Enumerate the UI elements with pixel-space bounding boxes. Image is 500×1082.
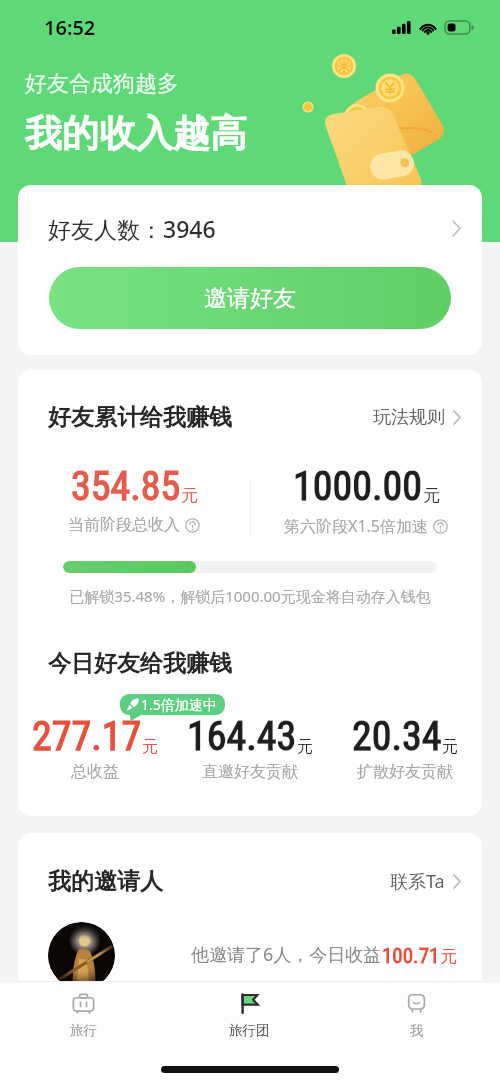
staticText: 元 (297, 737, 313, 757)
staticText: 邀请好友 (204, 284, 296, 313)
staticText: 好友合成狗越多 (25, 70, 179, 98)
staticText: 旅行团 (229, 1022, 270, 1039)
staticText: 20.34 (352, 713, 442, 760)
staticText: 277.17 (32, 713, 142, 760)
staticText: 元 (181, 485, 198, 506)
staticText: 扩散好友贡献 (357, 762, 453, 782)
staticText: 我的收入越高 (25, 110, 247, 157)
staticText: 旅行 (70, 1022, 97, 1039)
staticText: 我的邀请人 (48, 867, 163, 896)
staticText: 元 (142, 737, 158, 757)
button[interactable]: 玩法规则 (373, 403, 461, 432)
staticText: 第六阶段X1.5倍加速 (284, 515, 428, 537)
staticText: 354.85 (71, 463, 181, 510)
staticText: 玩法规则 (373, 406, 445, 429)
button[interactable]: 旅行团 (166, 982, 333, 1048)
staticText: 当前阶段总收入 (68, 515, 180, 535)
staticText: 元 (442, 737, 458, 757)
staticText: 16:52 (44, 14, 96, 41)
staticText: 我 (410, 1022, 424, 1039)
staticText: 164.43 (187, 713, 297, 760)
staticText: 100.71 (382, 944, 440, 969)
button[interactable]: 好友人数：3946 (18, 185, 482, 267)
staticText: 今日好友给我赚钱 (48, 649, 232, 678)
staticText: 已解锁35.48%，解锁后1000.00元现金将自动存入钱包 (18, 586, 482, 606)
staticText: 元 (440, 946, 457, 967)
staticText: 总收益 (71, 762, 119, 782)
staticText: 直邀好友贡献 (202, 762, 298, 782)
staticText: 好友人数：3946 (48, 213, 216, 244)
staticText: 1000.00 (293, 463, 423, 510)
button[interactable]: 我 (333, 982, 500, 1048)
staticText: 好友累计给我赚钱 (48, 403, 232, 432)
staticText: 1.5倍加速中 (141, 695, 217, 714)
staticText: 元 (423, 485, 440, 506)
staticText: 他邀请了6人，今日收益 (191, 942, 382, 967)
button[interactable]: 邀请好友 (49, 267, 451, 329)
button[interactable]: 旅行 (0, 982, 166, 1048)
staticText: 联系Ta (390, 869, 445, 894)
button[interactable]: 联系Ta (390, 866, 461, 897)
